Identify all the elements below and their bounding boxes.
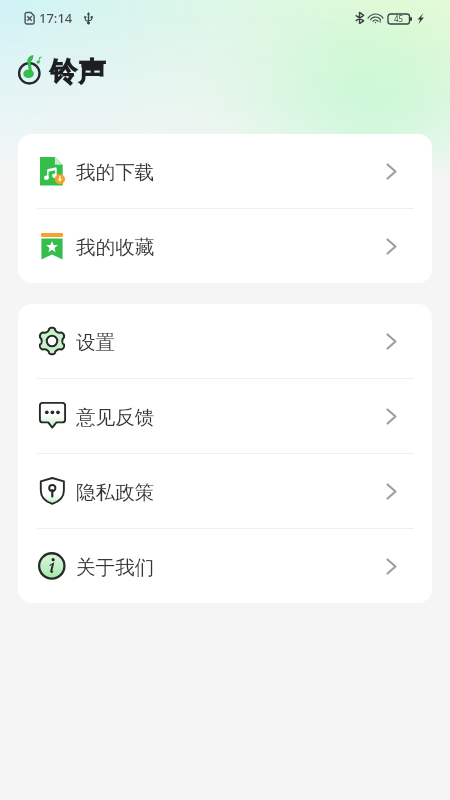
staticText: 我的收藏 (76, 235, 155, 260)
staticText: 17:14 (39, 9, 73, 27)
staticText: 意见反馈 (76, 405, 155, 430)
staticText: 我的下载 (76, 160, 155, 185)
staticText: 设置 (76, 330, 116, 355)
button[interactable]: 设置 (18, 304, 432, 378)
staticText: 45 (394, 13, 404, 24)
button[interactable]: 隐私政策 (18, 454, 432, 528)
staticText: 隐私政策 (76, 480, 155, 505)
button[interactable]: 意见反馈 (18, 379, 432, 453)
button[interactable]: 我的收藏 (18, 209, 432, 283)
staticText: 关于我们 (76, 555, 155, 580)
button[interactable]: 我的下载 (18, 134, 432, 208)
button[interactable]: 关于我们 (18, 529, 432, 603)
staticText: 铃声 (49, 55, 106, 89)
